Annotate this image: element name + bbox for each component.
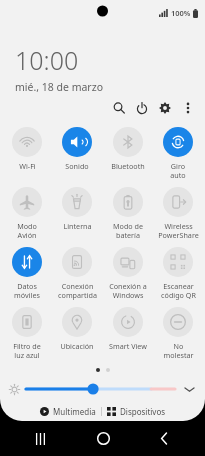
staticText: Modo Avión: [17, 221, 37, 240]
staticText: Datos móviles: [14, 281, 40, 300]
button[interactable]: Filtro de luz azul: [3, 304, 51, 364]
button[interactable]: Search: [107, 96, 130, 119]
button[interactable]: [26, 382, 175, 396]
staticText: mié., 18 de marzo: [15, 80, 103, 94]
button[interactable]: Wi-Fi: [3, 124, 51, 184]
staticText: Wireless PowerShare: [158, 221, 199, 240]
staticText: Dispositivos: [120, 406, 166, 417]
button[interactable]: Modo de batería: [104, 184, 152, 244]
button[interactable]: Settings: [153, 96, 176, 119]
staticText: Ubicación: [60, 341, 94, 351]
button[interactable]: Back: [143, 421, 185, 456]
button[interactable]: Home: [82, 421, 124, 456]
staticText: Multimedia: [53, 406, 96, 417]
button[interactable]: Modo Avión: [3, 184, 51, 244]
staticText: Conexión a Windows: [109, 281, 147, 300]
button[interactable]: Power: [130, 96, 153, 119]
staticText: Smart View: [109, 341, 147, 351]
staticText: Filtro de luz azul: [13, 341, 41, 360]
button[interactable]: Expand brightness: [182, 382, 196, 396]
button[interactable]: Giro auto: [154, 124, 202, 184]
button[interactable]: Conexión compartida: [53, 244, 101, 304]
button[interactable]: Smart View: [104, 304, 152, 364]
button[interactable]: More options: [176, 96, 199, 119]
button[interactable]: Ubicación: [53, 304, 101, 364]
button[interactable]: Recents: [20, 421, 62, 456]
button[interactable]: Sonido: [53, 124, 101, 184]
staticText: Giro auto: [170, 161, 186, 180]
staticText: Sonido: [65, 161, 89, 171]
button[interactable]: Linterna: [53, 184, 101, 244]
button[interactable]: Multimedia: [35, 404, 101, 419]
staticText: Wi-Fi: [19, 161, 36, 171]
button[interactable]: Escanear código QR: [154, 244, 202, 304]
button[interactable]: Wireless PowerShare: [154, 184, 202, 244]
staticText: Modo de batería: [113, 221, 143, 240]
staticText: Linterna: [63, 221, 92, 231]
staticText: 100%: [171, 8, 191, 18]
button[interactable]: No molestar: [154, 304, 202, 364]
button[interactable]: Dispositivos: [102, 404, 171, 419]
staticText: 10:00: [15, 43, 79, 77]
staticText: Conexión compartida: [58, 281, 97, 300]
staticText: Bluetooth: [111, 161, 145, 171]
button[interactable]: Bluetooth: [104, 124, 152, 184]
button[interactable]: Conexión a Windows: [104, 244, 152, 304]
staticText: No molestar: [163, 341, 194, 360]
staticText: Escanear código QR: [161, 281, 196, 300]
button[interactable]: Datos móviles: [3, 244, 51, 304]
